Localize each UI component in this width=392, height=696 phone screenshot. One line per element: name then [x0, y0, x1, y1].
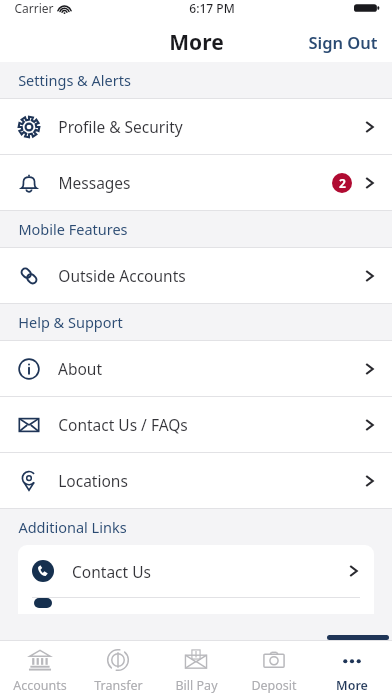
staticText: Contact Us: [72, 561, 151, 582]
staticText: 2: [339, 175, 346, 191]
staticText: Help & Support: [18, 312, 123, 332]
staticText: Contact Us / FAQs: [58, 414, 188, 435]
button[interactable]: Transfer: [80, 641, 156, 696]
staticText: Mobile Features: [18, 219, 128, 239]
staticText: Locations: [58, 470, 128, 491]
staticText: Transfer: [94, 677, 143, 694]
button[interactable]: Bill Pay: [158, 641, 234, 696]
staticText: Sign Out: [308, 31, 378, 53]
button[interactable]: Contact Us / FAQs: [0, 397, 392, 452]
button[interactable]: Deposit: [236, 641, 312, 696]
staticText: Bill Pay: [175, 677, 218, 694]
staticText: Carrier: [14, 0, 54, 16]
button[interactable]: Sign Out: [294, 25, 392, 59]
staticText: Settings & Alerts: [18, 70, 131, 90]
button[interactable]: Outside Accounts: [0, 248, 392, 303]
staticText: More: [336, 677, 368, 694]
button[interactable]: Locations: [0, 453, 392, 508]
staticText: Profile & Security: [58, 116, 183, 137]
button[interactable]: Accounts: [2, 641, 78, 696]
staticText: Accounts: [13, 677, 67, 694]
staticText: More: [169, 28, 224, 57]
staticText: Outside Accounts: [58, 265, 186, 286]
button[interactable]: More: [314, 641, 390, 696]
button[interactable]: Messages: [0, 155, 392, 210]
button[interactable]: Contact Us: [18, 545, 374, 597]
staticText: Messages: [58, 172, 131, 193]
staticText: Deposit: [251, 677, 297, 694]
button[interactable]: Profile & Security: [0, 99, 392, 154]
staticText: Additional Links: [18, 517, 127, 537]
button[interactable]: About: [0, 341, 392, 396]
staticText: 6:17 PM: [189, 0, 235, 16]
staticText: About: [58, 358, 102, 379]
